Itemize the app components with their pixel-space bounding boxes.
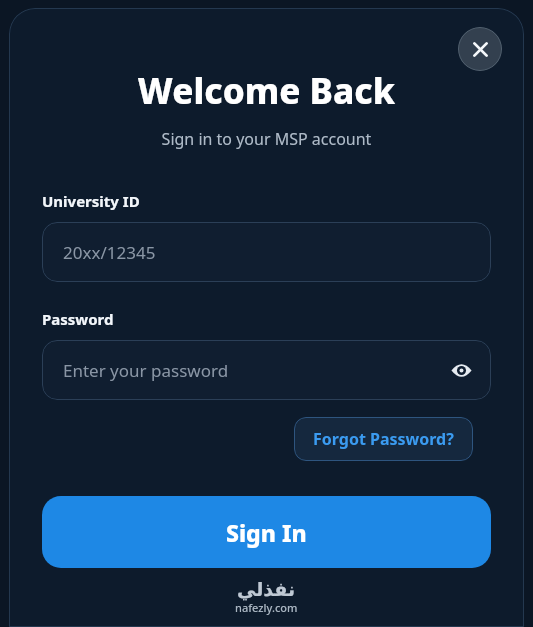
staticText: nafezly.com xyxy=(235,600,298,615)
staticText: Sign In xyxy=(226,517,307,548)
button[interactable]: Close xyxy=(458,27,502,71)
staticText: Forgot Password? xyxy=(313,428,454,450)
staticText: Welcome Back xyxy=(9,67,524,115)
staticText: University ID xyxy=(42,191,140,211)
button[interactable]: Sign In xyxy=(42,496,491,568)
button[interactable]: Show password xyxy=(444,353,478,387)
staticText: نفذلي xyxy=(237,578,296,600)
button[interactable]: Enter your password xyxy=(42,340,491,400)
button[interactable]: Forgot Password? xyxy=(294,417,473,461)
staticText: Enter your password xyxy=(63,359,229,382)
staticText: Sign in to your MSP account xyxy=(9,128,524,150)
button[interactable]: 20xx/12345 xyxy=(42,222,491,282)
staticText: Password xyxy=(42,309,114,329)
staticText: 20xx/12345 xyxy=(63,241,156,264)
